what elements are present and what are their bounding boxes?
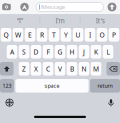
button[interactable]: Delete	[106, 62, 120, 76]
button[interactable]: J	[79, 45, 89, 59]
button[interactable]: Y	[61, 28, 71, 42]
button[interactable]: return	[90, 79, 120, 93]
button[interactable]: 123	[0, 79, 14, 93]
staticText: Q	[3, 30, 8, 39]
button[interactable]: Apps	[18, 0, 31, 14]
staticText: It’s	[96, 16, 105, 25]
staticText: H	[69, 47, 74, 56]
staticText: E	[28, 30, 32, 39]
button[interactable]: X	[31, 62, 41, 76]
button[interactable]: R	[37, 28, 47, 42]
staticText: I	[89, 30, 91, 39]
button[interactable]: Send	[106, 0, 118, 14]
button[interactable]: I	[85, 28, 95, 42]
button[interactable]: Camera	[0, 0, 13, 14]
button[interactable]: It’s	[80, 14, 120, 26]
button[interactable]: W	[13, 28, 23, 42]
button[interactable]: P	[109, 28, 119, 42]
button[interactable]: L	[103, 45, 113, 59]
button[interactable]: “I”	[0, 14, 40, 26]
button[interactable]: K	[91, 45, 101, 59]
button[interactable]: T	[49, 28, 59, 42]
staticText: U	[75, 30, 80, 39]
staticText: F	[46, 47, 49, 56]
staticText: B	[70, 64, 74, 73]
staticText: K	[94, 47, 98, 56]
button[interactable]: Shift	[0, 62, 13, 76]
staticText: L	[106, 47, 109, 56]
staticText: G	[57, 47, 62, 56]
staticText: V	[58, 64, 62, 73]
staticText: A	[10, 47, 14, 56]
button[interactable]: S	[19, 45, 29, 59]
button[interactable]: U	[73, 28, 83, 42]
staticText: C	[46, 64, 50, 73]
staticText: S	[22, 47, 26, 56]
staticText: T	[52, 30, 56, 39]
button[interactable]: Next keyboard	[2, 96, 16, 110]
button[interactable]: M	[91, 62, 101, 76]
button[interactable]: Dictation	[104, 95, 117, 110]
button[interactable]: I’m	[40, 14, 80, 26]
staticText: Y	[64, 30, 68, 39]
staticText: M	[93, 64, 99, 73]
staticText: 123	[2, 82, 11, 89]
button[interactable]: D	[31, 45, 41, 59]
button[interactable]: A	[7, 45, 17, 59]
button[interactable]: N	[79, 62, 89, 76]
staticText: J	[83, 47, 85, 56]
staticText: D	[33, 47, 38, 56]
staticText: return	[97, 82, 112, 89]
button[interactable]: C	[43, 62, 53, 76]
button[interactable]: space	[15, 79, 89, 93]
button[interactable]: V	[55, 62, 65, 76]
staticText: I’m	[55, 16, 64, 25]
button[interactable]: F	[43, 45, 53, 59]
staticText: W	[15, 30, 21, 39]
staticText: iMessage	[41, 3, 65, 11]
button[interactable]: H	[67, 45, 77, 59]
staticText: N	[81, 64, 86, 73]
staticText: P	[112, 30, 116, 39]
staticText: O	[99, 30, 104, 39]
button[interactable]: G	[55, 45, 65, 59]
staticText: R	[40, 30, 44, 39]
button[interactable]: B	[67, 62, 77, 76]
staticText: space	[44, 82, 59, 89]
staticText: “I”	[17, 16, 23, 25]
button[interactable]: Q	[1, 28, 11, 42]
staticText: Z	[22, 64, 26, 73]
staticText: X	[34, 64, 38, 73]
button[interactable]: E	[25, 28, 35, 42]
button[interactable]: Z	[19, 62, 29, 76]
button[interactable]: O	[97, 28, 107, 42]
